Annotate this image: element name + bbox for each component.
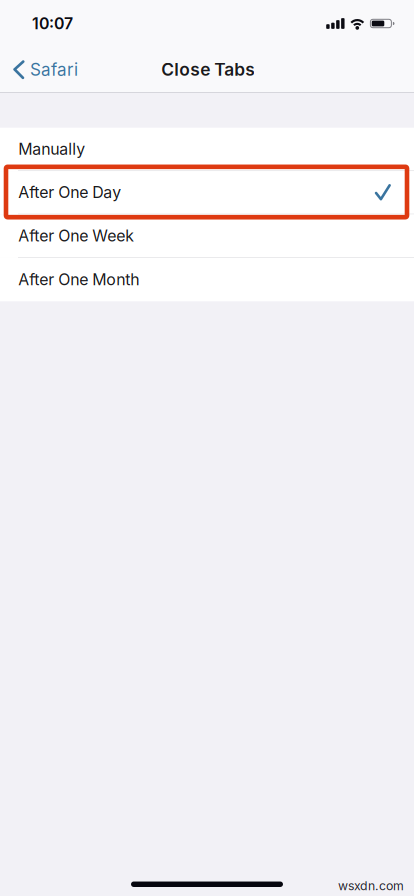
staticText: 10:07: [32, 14, 73, 33]
staticText: wsxdn.com: [338, 878, 404, 893]
button[interactable]: Manually: [0, 128, 414, 171]
staticText: Safari: [30, 59, 78, 80]
button[interactable]: After One Day: [0, 171, 414, 214]
staticText: Manually: [18, 139, 85, 159]
staticText: After One Day: [18, 183, 121, 202]
staticText: After One Month: [18, 270, 139, 289]
button[interactable]: Safari: [0, 47, 88, 92]
staticText: Close Tabs: [161, 59, 255, 80]
button[interactable]: After One Week: [0, 214, 414, 258]
staticText: After One Week: [18, 226, 134, 245]
button[interactable]: After One Month: [0, 258, 414, 301]
